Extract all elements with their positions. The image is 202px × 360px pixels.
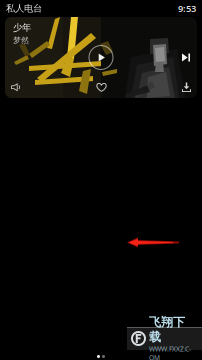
button[interactable]: Mute xyxy=(8,80,24,94)
button[interactable]: Play xyxy=(89,45,113,69)
button[interactable]: Next track xyxy=(178,49,194,65)
staticText: 梦然 xyxy=(13,35,29,45)
staticText: 9:53 xyxy=(178,2,196,15)
staticText: 飞翔下载 xyxy=(149,315,185,344)
staticText: 少年 xyxy=(13,22,31,33)
staticText: WWW.FXXZ.COM xyxy=(149,344,191,360)
staticText: 私人电台 xyxy=(6,3,42,14)
button[interactable]: Like xyxy=(93,80,109,95)
button[interactable]: Download xyxy=(179,79,194,95)
